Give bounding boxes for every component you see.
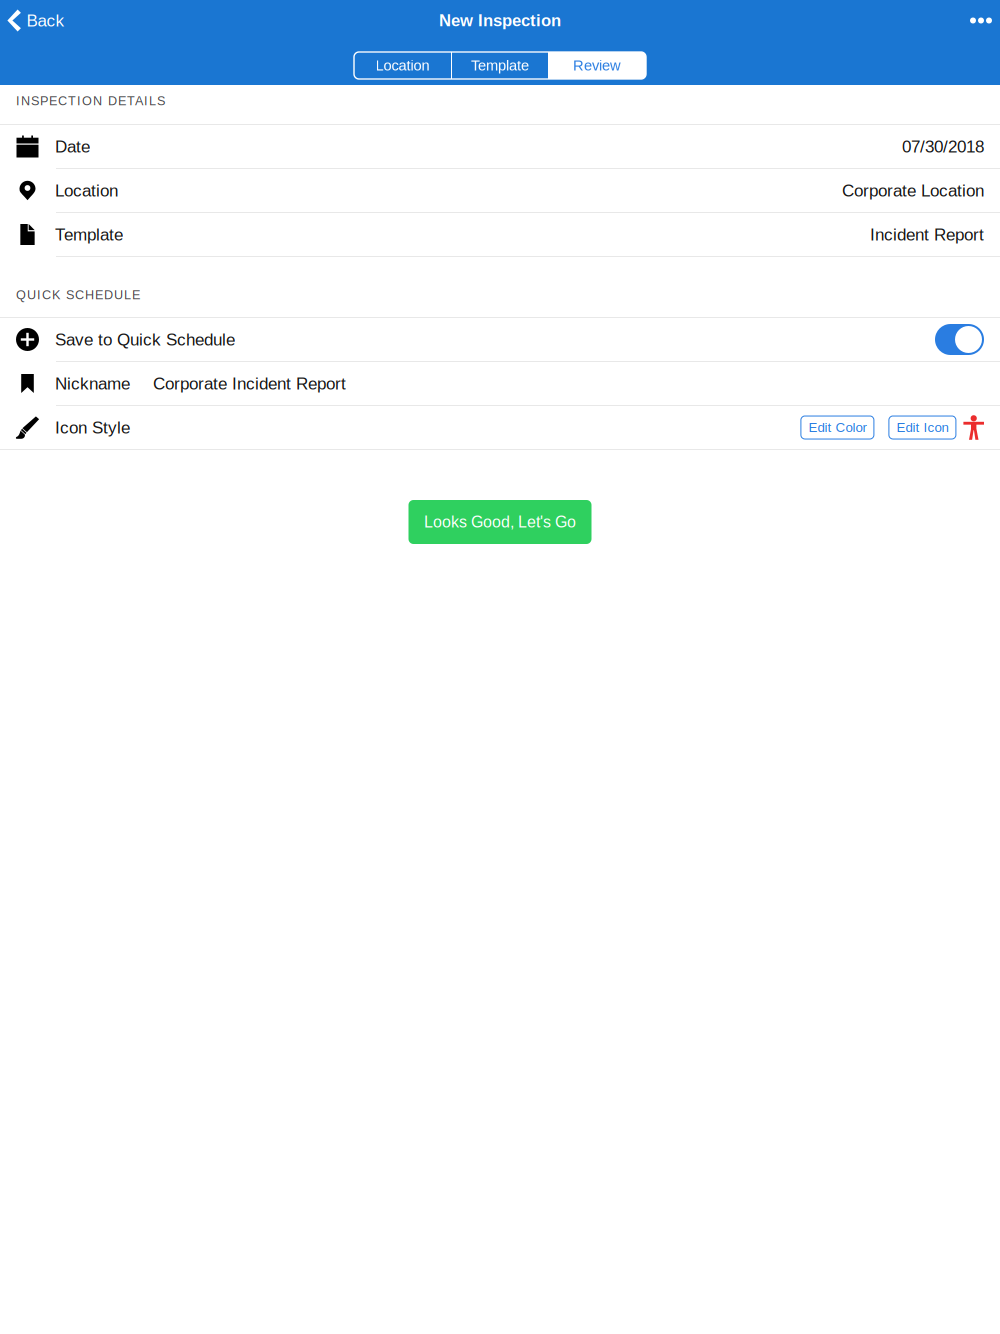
staticText: 07/30/2018 [902,137,984,156]
button[interactable]: Looks Good, Let's Go [408,500,591,544]
staticText: Template [471,57,529,74]
button[interactable]: Location [354,52,451,79]
staticText: QUICK SCHEDULE [16,288,140,302]
staticText: Edit Icon [896,420,948,435]
staticText: Incident Report [870,225,984,244]
button[interactable]: Date [0,125,1000,169]
button[interactable]: Edit Color [801,416,874,439]
button[interactable]: Template [0,213,1000,257]
staticText: Review [573,57,621,74]
staticText: Looks Good, Let's Go [424,513,576,531]
button[interactable]: Save to Quick Schedule [0,318,1000,362]
button[interactable]: Template [452,52,548,79]
button[interactable]: More options [956,0,1000,41]
staticText: Location [55,181,118,200]
staticText: Corporate Incident Report [153,374,346,393]
staticText: Edit Color [808,420,866,435]
staticText: Template [55,225,123,244]
staticText: Corporate Location [842,181,984,200]
staticText: Location [375,57,429,74]
staticText: New Inspection [439,11,561,30]
staticText: INSPECTION DETAILS [16,94,165,108]
button[interactable]: Nickname [0,362,1000,406]
staticText: Date [55,137,90,156]
button[interactable]: Location [0,169,1000,213]
staticText: Icon Style [55,418,130,437]
button[interactable]: Back [0,0,74,41]
staticText: Nickname [55,374,130,393]
button[interactable]: Edit Icon [874,416,956,439]
staticText: Back [26,11,64,30]
button[interactable]: Review [548,52,646,79]
staticText: Save to Quick Schedule [55,330,235,349]
